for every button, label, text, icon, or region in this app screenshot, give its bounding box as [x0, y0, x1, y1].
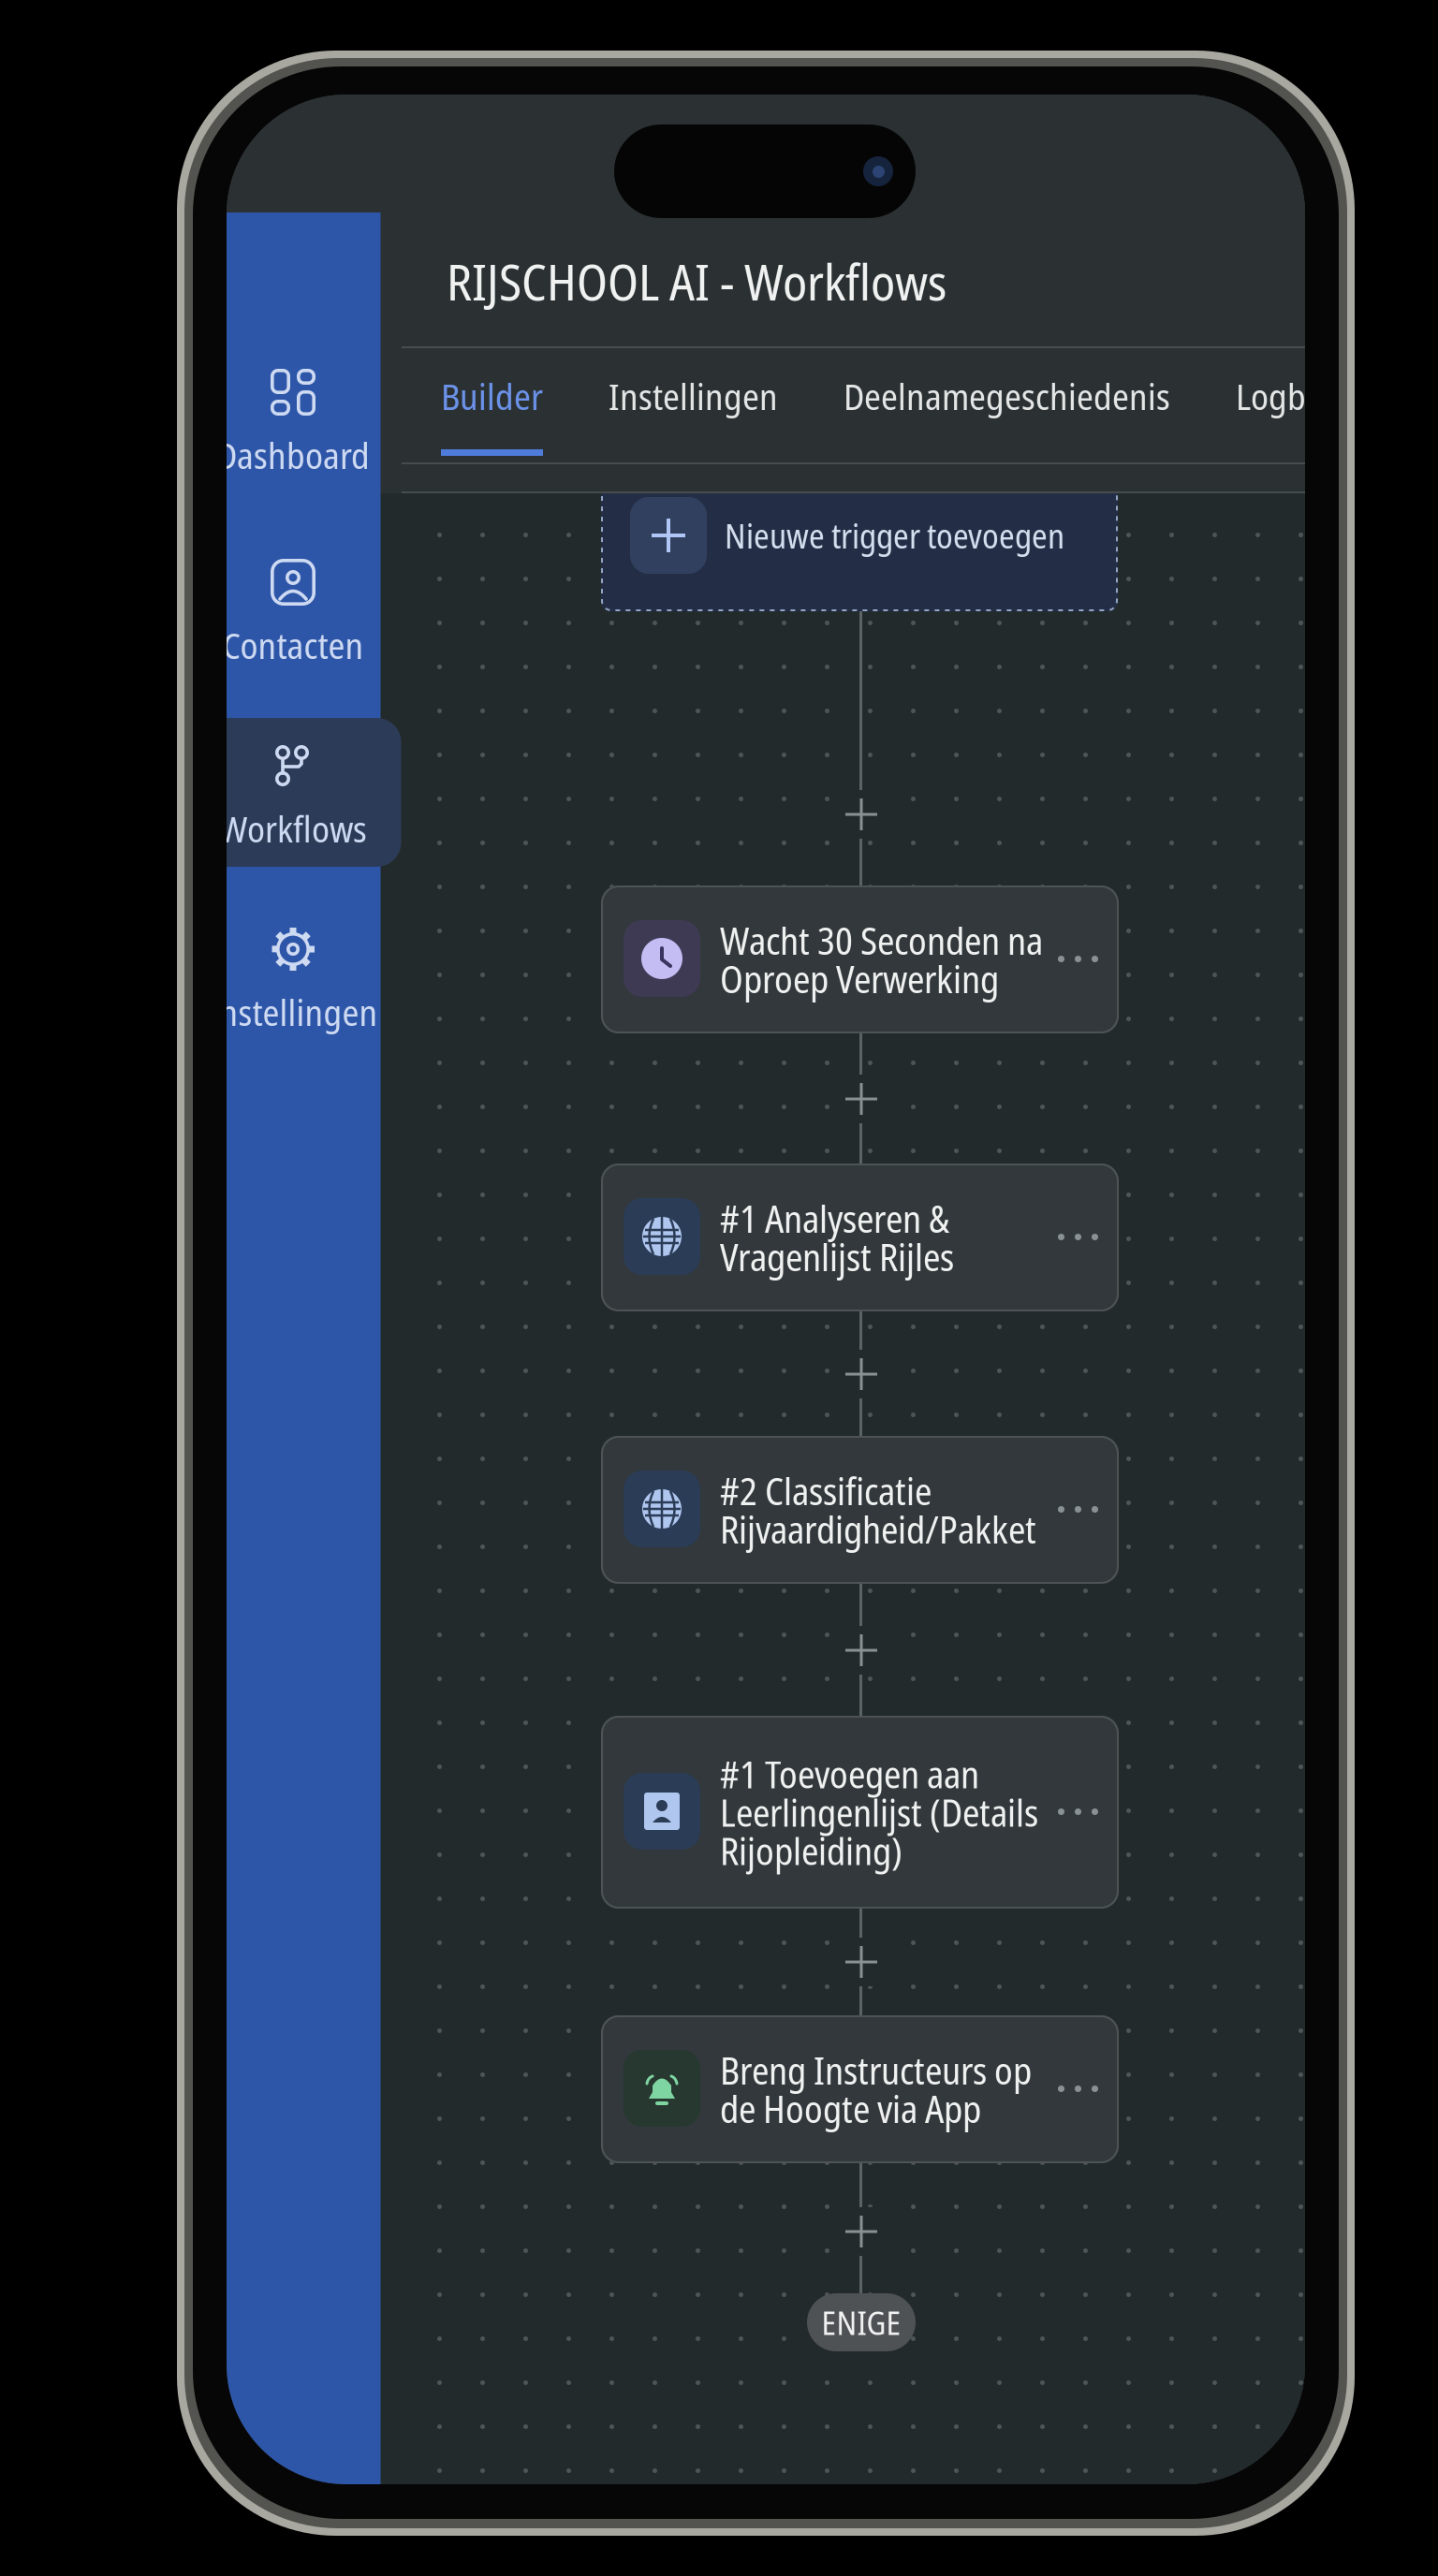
- button[interactable]: #1 Analyseren &: [601, 1164, 1119, 1311]
- staticText: #2 Classificatie: [720, 1465, 932, 1516]
- staticText: Rijvaardigheid/Pakket: [720, 1504, 1036, 1555]
- staticText: ENIGE: [822, 2300, 901, 2344]
- button[interactable]: Nieuwe trigger toevoegen: [601, 459, 1118, 611]
- button[interactable]: Builder: [408, 348, 576, 462]
- staticText: Rijopleiding): [720, 1825, 902, 1876]
- staticText: Contacten: [222, 620, 364, 670]
- staticText: Vragenlijst Rijles: [720, 1231, 954, 1282]
- staticText: Dashboard: [216, 430, 370, 480]
- button[interactable]: Logbo: [1203, 348, 1357, 462]
- button[interactable]: Instellingen: [205, 926, 381, 1034]
- staticText: de Hoogte via App: [720, 2083, 981, 2134]
- button[interactable]: #2 Classificatie: [601, 1436, 1119, 1584]
- button[interactable]: Stap toevoegen: [834, 1626, 888, 1675]
- staticText: Deelnamegeschiedenis: [844, 371, 1170, 421]
- button[interactable]: Contacten: [205, 559, 381, 667]
- button[interactable]: #1 Toevoegen aan: [601, 1716, 1119, 1909]
- button[interactable]: ENIGE: [807, 2293, 916, 2351]
- button[interactable]: Stap toevoegen: [834, 790, 888, 839]
- staticText: Leerlingenlijst (Details: [720, 1787, 1038, 1838]
- button[interactable]: Stap toevoegen: [834, 2207, 888, 2256]
- staticText: Instellingen: [208, 987, 378, 1037]
- button[interactable]: Wacht 30 Seconden na: [601, 885, 1119, 1033]
- button[interactable]: Dashboard: [205, 369, 381, 477]
- staticText: #1 Toevoegen aan: [720, 1748, 979, 1799]
- button[interactable]: Breng Instructeurs op: [601, 2015, 1119, 2163]
- button[interactable]: Deelnamegeschiedenis: [811, 348, 1203, 462]
- staticText: Workflows: [219, 804, 367, 853]
- staticText: Wacht 30 Seconden na: [720, 915, 1043, 966]
- staticText: Instellingen: [609, 371, 778, 421]
- staticText: Oproep Verwerking: [720, 953, 999, 1004]
- staticText: #1 Analyseren &: [720, 1193, 949, 1244]
- staticText: Builder: [441, 371, 543, 421]
- button[interactable]: Workflows: [205, 742, 381, 851]
- staticText: Breng Instructeurs op: [720, 2045, 1032, 2096]
- button[interactable]: Stap toevoegen: [834, 1350, 888, 1398]
- button[interactable]: Stap toevoegen: [834, 1075, 888, 1123]
- staticText: Logbo: [1236, 371, 1324, 421]
- staticText: Nieuwe trigger toevoegen: [725, 512, 1064, 558]
- staticText: RIJSCHOOL AI - Workflows: [447, 247, 946, 315]
- button[interactable]: Stap toevoegen: [834, 1938, 888, 1986]
- button[interactable]: Instellingen: [576, 348, 811, 462]
